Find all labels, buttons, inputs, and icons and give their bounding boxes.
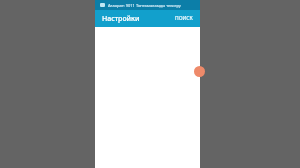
other: Touch indicator <box>194 66 205 77</box>
staticText: ПОИСК <box>175 15 193 22</box>
button[interactable]: ПОИСК <box>174 13 194 24</box>
button[interactable]: Настройки <box>102 14 140 24</box>
staticText: Аккорат: 9011 Топтамаламды тексеру <box>108 3 181 8</box>
